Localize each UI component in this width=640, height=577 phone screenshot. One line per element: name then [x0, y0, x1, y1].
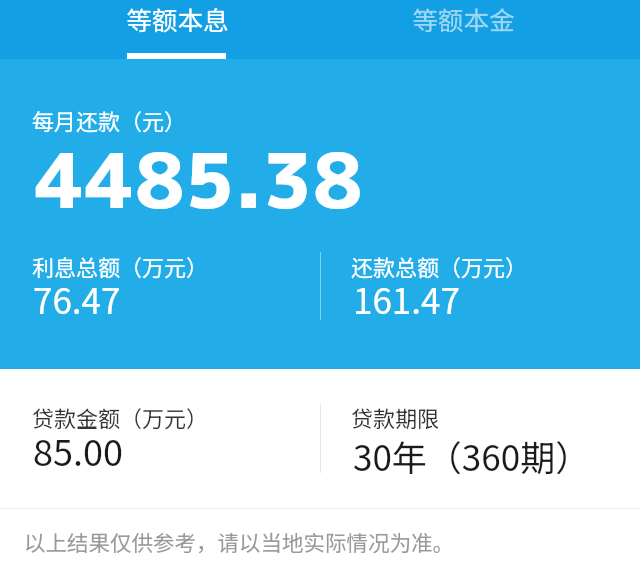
- staticText: 76.47: [33, 273, 121, 324]
- staticText: 等额本金: [412, 0, 515, 37]
- staticText: 贷款期限: [351, 401, 440, 433]
- staticText: 4485.38: [35, 126, 364, 232]
- staticText: 85.00: [33, 424, 123, 476]
- staticText: 贷款金额（万元）: [32, 401, 209, 433]
- staticText: 以上结果仅供参考，请以当地实际情况为准。: [24, 526, 455, 557]
- staticText: 每月还款（元）: [32, 104, 187, 136]
- staticText: 等额本息: [126, 0, 229, 37]
- staticText: 还款总额（万元）: [351, 250, 528, 282]
- staticText: 利息总额（万元）: [32, 250, 209, 282]
- button[interactable]: 等额本息: [34, 0, 320, 59]
- staticText: 30年（360期）: [353, 430, 591, 481]
- staticText: 161.47: [353, 273, 460, 324]
- button[interactable]: 等额本金: [320, 0, 606, 59]
